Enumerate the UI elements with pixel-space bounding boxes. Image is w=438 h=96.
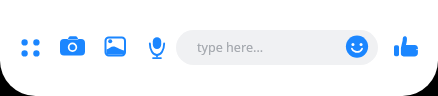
button[interactable]: Like [392, 32, 422, 62]
button[interactable]: Emoji [345, 34, 369, 58]
button[interactable]: Voice message [144, 32, 172, 60]
button[interactable]: Camera [58, 32, 88, 62]
button[interactable]: More options [12, 31, 44, 63]
button[interactable]: Photos [100, 32, 130, 62]
button[interactable]: type here... [176, 30, 378, 65]
staticText: type here... [197, 39, 264, 56]
